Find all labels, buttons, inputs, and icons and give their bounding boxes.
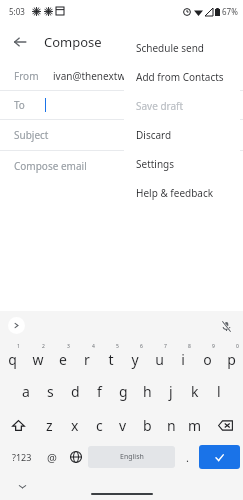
staticText: ivan@thenextweb.c [53, 69, 145, 83]
button[interactable]: u [147, 340, 171, 374]
staticText: b [143, 416, 152, 435]
staticText: s [47, 382, 54, 401]
staticText: 3 [67, 343, 70, 350]
button[interactable]: e [50, 340, 75, 374]
button[interactable]: Back [5, 27, 35, 57]
button[interactable]: Help & feedback [124, 178, 240, 207]
staticText: Discard [136, 128, 172, 142]
staticText: 0 [236, 343, 239, 350]
staticText: 2 [42, 343, 45, 350]
staticText: 6 [140, 343, 143, 350]
staticText: e [59, 350, 67, 369]
button[interactable]: . [175, 442, 199, 472]
button[interactable]: q [0, 340, 25, 374]
button[interactable]: s [38, 374, 63, 408]
button[interactable]: To [0, 91, 243, 119]
button[interactable]: m [183, 408, 207, 442]
button[interactable]: v [111, 408, 135, 442]
button[interactable]: l [207, 374, 231, 408]
staticText: 67% [222, 6, 238, 17]
staticText: u [155, 350, 164, 369]
button[interactable]: English [88, 446, 175, 468]
staticText: m [188, 416, 202, 435]
button[interactable]: n [159, 408, 183, 442]
button[interactable]: j [159, 374, 183, 408]
staticText: d [71, 382, 80, 401]
staticText: x [71, 416, 79, 435]
staticText: English [120, 452, 144, 462]
button[interactable]: Shift [0, 408, 37, 442]
staticText: 9 [212, 343, 215, 350]
button[interactable]: h [135, 374, 159, 408]
staticText: Add from Contacts [136, 70, 224, 84]
button[interactable]: From [0, 62, 243, 90]
staticText: i [181, 350, 185, 369]
button[interactable]: ?123 [3, 442, 40, 472]
staticText: Help & feedback [136, 186, 214, 200]
button[interactable]: Expand [8, 317, 25, 334]
staticText: @ [47, 450, 57, 465]
staticText: v [119, 416, 127, 435]
staticText: j [169, 382, 173, 401]
button[interactable]: f [87, 374, 111, 408]
staticText: Save draft [136, 99, 184, 113]
button[interactable]: i [171, 340, 195, 374]
staticText: 8 [188, 343, 191, 350]
staticText: o [203, 350, 212, 369]
staticText: 5:03 [9, 6, 25, 17]
staticText: Settings [136, 157, 175, 171]
button[interactable]: @ [40, 442, 64, 472]
button[interactable]: w [25, 340, 50, 374]
button[interactable]: p [219, 340, 243, 374]
button[interactable]: Hide keyboard [13, 477, 31, 495]
button[interactable]: g [111, 374, 135, 408]
button[interactable]: t [99, 340, 123, 374]
staticText: z [46, 416, 53, 435]
button[interactable]: b [135, 408, 159, 442]
button[interactable]: Voice input off [217, 317, 235, 335]
button[interactable]: Schedule send [124, 33, 240, 62]
staticText: q [8, 350, 17, 369]
staticText: ?123 [12, 451, 32, 463]
staticText: Compose [44, 33, 102, 51]
button[interactable]: o [195, 340, 219, 374]
staticText: h [143, 382, 152, 401]
button[interactable]: Save draft [124, 91, 240, 120]
staticText: 5 [116, 343, 119, 350]
staticText: g [119, 382, 128, 401]
button[interactable]: Send [199, 445, 240, 469]
staticText: p [227, 350, 236, 369]
staticText: y [131, 350, 139, 369]
staticText: From [14, 69, 39, 83]
staticText: To [14, 98, 25, 112]
button[interactable]: Subject [0, 120, 243, 150]
button[interactable]: x [62, 408, 87, 442]
button[interactable]: Backspace [207, 408, 243, 442]
button[interactable]: Discard [124, 120, 240, 149]
staticText: 7 [164, 343, 167, 350]
button[interactable]: c [87, 408, 111, 442]
button[interactable]: k [183, 374, 207, 408]
button[interactable]: Add from Contacts [124, 62, 240, 91]
staticText: l [217, 382, 221, 401]
button[interactable]: Change language [64, 442, 88, 472]
staticText: c [96, 416, 103, 435]
button[interactable]: a [13, 374, 38, 408]
staticText: t [108, 350, 114, 369]
button[interactable]: r [75, 340, 99, 374]
staticText: Subject [14, 128, 49, 142]
staticText: k [191, 382, 199, 401]
staticText: Schedule send [136, 41, 205, 55]
staticText: 1 [17, 343, 20, 350]
staticText: w [32, 350, 44, 369]
staticText: . [186, 450, 189, 465]
button[interactable]: Settings [124, 149, 240, 178]
staticText: Compose email [14, 159, 87, 173]
button[interactable]: d [63, 374, 87, 408]
staticText: a [22, 382, 30, 401]
button[interactable]: z [37, 408, 62, 442]
button[interactable]: Compose email [0, 151, 243, 181]
button[interactable]: y [123, 340, 147, 374]
staticText: 4 [92, 343, 95, 350]
staticText: f [97, 382, 102, 401]
